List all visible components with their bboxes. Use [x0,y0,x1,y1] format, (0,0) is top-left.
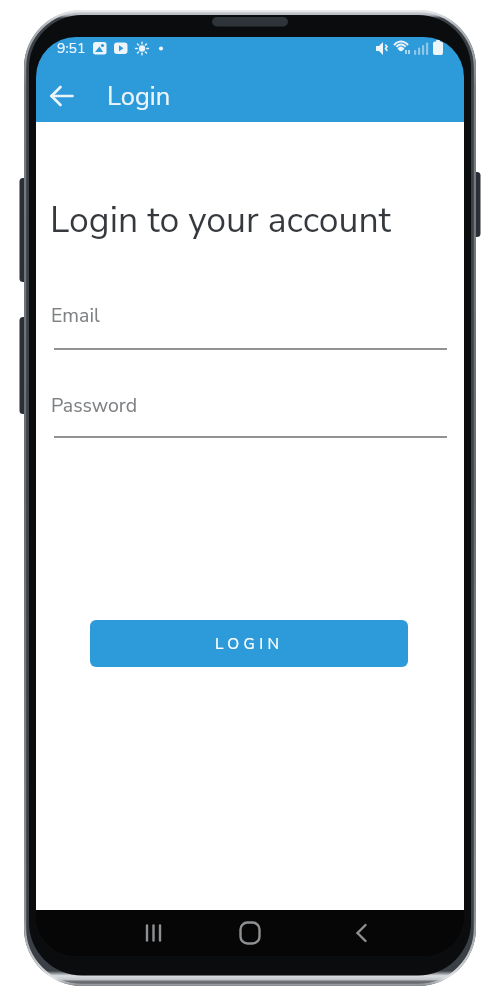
button[interactable] [130,910,178,956]
staticText: Email [51,302,100,329]
staticText: LOGIN [215,633,284,654]
button[interactable] [226,910,274,956]
staticText: Login to your account [50,196,391,244]
staticText: 9:51 [57,39,86,58]
staticText: Password [51,392,138,419]
button[interactable] [40,74,84,118]
button[interactable] [52,382,447,444]
staticText: Login [107,79,171,114]
button[interactable] [52,292,447,354]
button[interactable]: LOGIN [90,620,408,667]
button[interactable] [338,910,386,956]
